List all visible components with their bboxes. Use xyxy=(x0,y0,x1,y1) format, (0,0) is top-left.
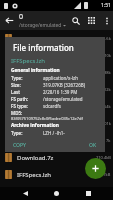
staticText: General information xyxy=(11,67,99,74)
staticText: 4.6k xyxy=(103,36,111,41)
staticText: application/x-lzh xyxy=(43,75,99,81)
button[interactable]: hidden-1.0.21 xyxy=(0,30,113,47)
button[interactable]: COPY xyxy=(11,140,28,151)
staticText: Download.7z xyxy=(17,154,96,162)
button[interactable]: archive.lzh xyxy=(0,47,113,64)
staticText: notes.zip xyxy=(17,86,104,94)
button[interactable]: Back xyxy=(19,187,32,200)
staticText: 2/28/16 1:39 PM xyxy=(43,89,99,95)
staticText: File information xyxy=(13,42,74,53)
staticText: Size: xyxy=(11,82,43,88)
staticText: 210.4kB xyxy=(96,155,111,160)
staticText: Last modification: xyxy=(11,89,43,95)
staticText: sample.tar xyxy=(17,69,104,77)
button[interactable]: misc.7z xyxy=(0,132,113,149)
staticText: misc.7z xyxy=(17,137,106,145)
staticText: 0 xyxy=(19,12,24,22)
button[interactable]: Download.7z xyxy=(0,149,113,166)
button[interactable]: data.gz xyxy=(0,98,113,115)
staticText: MD5: xyxy=(11,110,99,116)
button[interactable]: Back xyxy=(0,11,19,30)
button[interactable]: Add xyxy=(85,158,106,179)
staticText: 319.07kB xyxy=(93,172,111,177)
staticText: COPY xyxy=(13,142,26,149)
staticText: LZH / -lh1- xyxy=(43,130,99,136)
staticText: OK xyxy=(89,142,97,149)
staticText: 12k xyxy=(104,87,111,92)
staticText: archive.lzh xyxy=(17,52,102,60)
staticText: FS path: xyxy=(11,96,43,102)
button[interactable]: Grid view xyxy=(84,13,100,29)
button[interactable]: OK xyxy=(87,140,99,151)
staticText: sdcardfs xyxy=(43,103,99,109)
staticText: 7k xyxy=(106,138,111,143)
button[interactable]: notes.zip xyxy=(0,81,113,98)
staticText: 901k xyxy=(102,121,111,126)
staticText: 210k xyxy=(102,53,111,58)
button[interactable]: Home xyxy=(50,187,63,200)
staticText: Type: xyxy=(11,130,43,136)
staticText: 1:51 xyxy=(101,2,111,9)
button[interactable]: image.rar xyxy=(0,115,113,132)
staticText: IFFSpecs.lzh xyxy=(11,57,46,65)
staticText: 319.07KB (326726B) xyxy=(43,82,99,88)
button[interactable]: libxyz-1.0.21.z xyxy=(0,183,113,200)
staticText: /storage/emulated xyxy=(43,96,99,102)
staticText: Type: xyxy=(11,75,43,81)
staticText: libxyz-1.0.21.z xyxy=(17,188,93,196)
staticText: image.rar xyxy=(17,120,102,128)
staticText: FS type: xyxy=(11,103,43,109)
button[interactable]: IFFSpecs.lzh xyxy=(0,166,113,183)
staticText: 88k xyxy=(104,70,111,75)
staticText: data.gz xyxy=(17,103,104,111)
button[interactable]: More options xyxy=(100,14,113,27)
staticText: /storage/emulated xyxy=(19,22,62,29)
staticText: hidden-1.0.21 xyxy=(17,35,103,43)
staticText: 83f0575109752c8c0f5adee035c12e7df xyxy=(11,116,99,121)
button[interactable]: Search xyxy=(68,13,84,29)
button[interactable]: Recents xyxy=(82,187,95,200)
staticText: Archive information xyxy=(11,122,99,129)
button[interactable]: sample.tar xyxy=(0,64,113,81)
staticText: IFFSpecs.lzh xyxy=(17,171,93,179)
staticText: 64k xyxy=(104,104,111,109)
